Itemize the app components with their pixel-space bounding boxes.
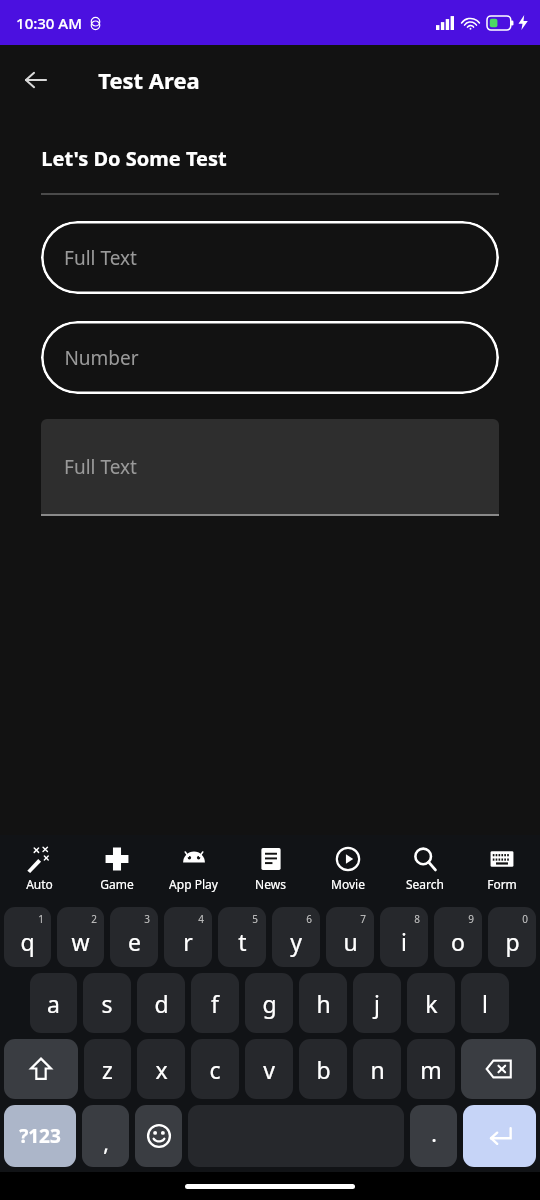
- staticText: 8: [414, 912, 420, 926]
- button[interactable]: ?123: [4, 1105, 76, 1167]
- staticText: App Play: [169, 876, 218, 892]
- button[interactable]: Full Text: [41, 221, 499, 294]
- button[interactable]: p: [488, 907, 536, 967]
- staticText: h: [316, 988, 331, 1019]
- staticText: r: [183, 926, 193, 957]
- button[interactable]: x: [137, 1039, 185, 1099]
- button[interactable]: u: [326, 907, 374, 967]
- button[interactable]: .: [410, 1105, 457, 1167]
- button[interactable]: q: [4, 907, 51, 967]
- button[interactable]: News: [232, 835, 309, 903]
- button[interactable]: v: [245, 1039, 293, 1099]
- staticText: c: [209, 1054, 221, 1085]
- button[interactable]: i: [380, 907, 428, 967]
- button[interactable]: Auto: [0, 835, 78, 903]
- staticText: e: [128, 926, 141, 957]
- staticText: Number: [64, 345, 139, 371]
- button[interactable]: z: [84, 1039, 131, 1099]
- staticText: News: [255, 876, 286, 892]
- button[interactable]: Full Text: [41, 419, 499, 516]
- staticText: Full Text: [64, 245, 137, 271]
- staticText: Movie: [331, 876, 365, 892]
- button[interactable]: n: [353, 1039, 401, 1099]
- staticText: j: [374, 988, 380, 1019]
- button[interactable]: c: [191, 1039, 239, 1099]
- staticText: i: [401, 926, 407, 957]
- staticText: 1: [38, 912, 44, 926]
- staticText: n: [370, 1054, 385, 1085]
- staticText: o: [451, 926, 465, 957]
- button[interactable]: l: [461, 973, 509, 1033]
- button[interactable]: Emoji: [135, 1105, 182, 1167]
- button[interactable]: g: [245, 973, 293, 1033]
- button[interactable]: f: [191, 973, 239, 1033]
- button[interactable]: App Play: [155, 835, 232, 903]
- staticText: q: [20, 926, 35, 957]
- staticText: Let's Do Some Test: [41, 145, 227, 172]
- button[interactable]: b: [299, 1039, 347, 1099]
- staticText: ?123: [19, 1123, 61, 1149]
- button[interactable]: m: [407, 1039, 455, 1099]
- staticText: k: [425, 988, 438, 1019]
- staticText: Test Area: [98, 65, 200, 95]
- staticText: v: [263, 1054, 275, 1085]
- button[interactable]: Enter: [463, 1105, 536, 1167]
- button[interactable]: s: [83, 973, 131, 1033]
- button[interactable]: k: [407, 973, 455, 1033]
- button[interactable]: y: [272, 907, 320, 967]
- staticText: 5: [252, 912, 258, 926]
- button[interactable]: w: [57, 907, 104, 967]
- button[interactable]: ,: [82, 1105, 129, 1167]
- staticText: t: [238, 926, 247, 957]
- staticText: 9: [468, 912, 474, 926]
- staticText: 0: [522, 912, 528, 926]
- button[interactable]: e: [110, 907, 158, 967]
- staticText: ,: [103, 1129, 109, 1158]
- button[interactable]: Back: [12, 56, 60, 104]
- staticText: g: [262, 988, 277, 1019]
- button[interactable]: Search: [386, 835, 463, 903]
- button[interactable]: Form: [463, 835, 540, 903]
- staticText: m: [420, 1054, 442, 1085]
- staticText: 3: [144, 912, 150, 926]
- button[interactable]: j: [353, 973, 401, 1033]
- staticText: b: [316, 1054, 331, 1085]
- staticText: Form: [487, 876, 517, 892]
- staticText: z: [102, 1054, 113, 1085]
- staticText: u: [343, 926, 358, 957]
- staticText: Full Text: [64, 454, 137, 480]
- staticText: Search: [406, 876, 444, 892]
- staticText: .: [431, 1120, 437, 1149]
- staticText: f: [211, 988, 219, 1019]
- button[interactable]: t: [218, 907, 266, 967]
- button[interactable]: h: [299, 973, 347, 1033]
- button[interactable]: Movie: [309, 835, 386, 903]
- staticText: x: [155, 1054, 168, 1085]
- staticText: y: [290, 926, 302, 957]
- button[interactable]: r: [164, 907, 212, 967]
- staticText: 4: [198, 912, 204, 926]
- staticText: a: [47, 988, 60, 1019]
- button[interactable]: Number: [41, 321, 499, 394]
- staticText: Game: [100, 876, 134, 892]
- staticText: 2: [91, 912, 97, 926]
- staticText: 10:30 AM: [16, 13, 82, 33]
- staticText: p: [505, 926, 520, 957]
- staticText: l: [482, 988, 488, 1019]
- button[interactable]: o: [434, 907, 482, 967]
- staticText: d: [154, 988, 169, 1019]
- staticText: 7: [360, 912, 366, 926]
- staticText: s: [101, 988, 113, 1019]
- button[interactable]: d: [137, 973, 185, 1033]
- staticText: w: [71, 926, 90, 957]
- staticText: 6: [306, 912, 312, 926]
- button[interactable]: Shift: [4, 1039, 78, 1099]
- staticText: Auto: [26, 876, 53, 892]
- button[interactable]: Game: [78, 835, 155, 903]
- button[interactable]: Backspace: [461, 1039, 536, 1099]
- button[interactable]: a: [30, 973, 77, 1033]
